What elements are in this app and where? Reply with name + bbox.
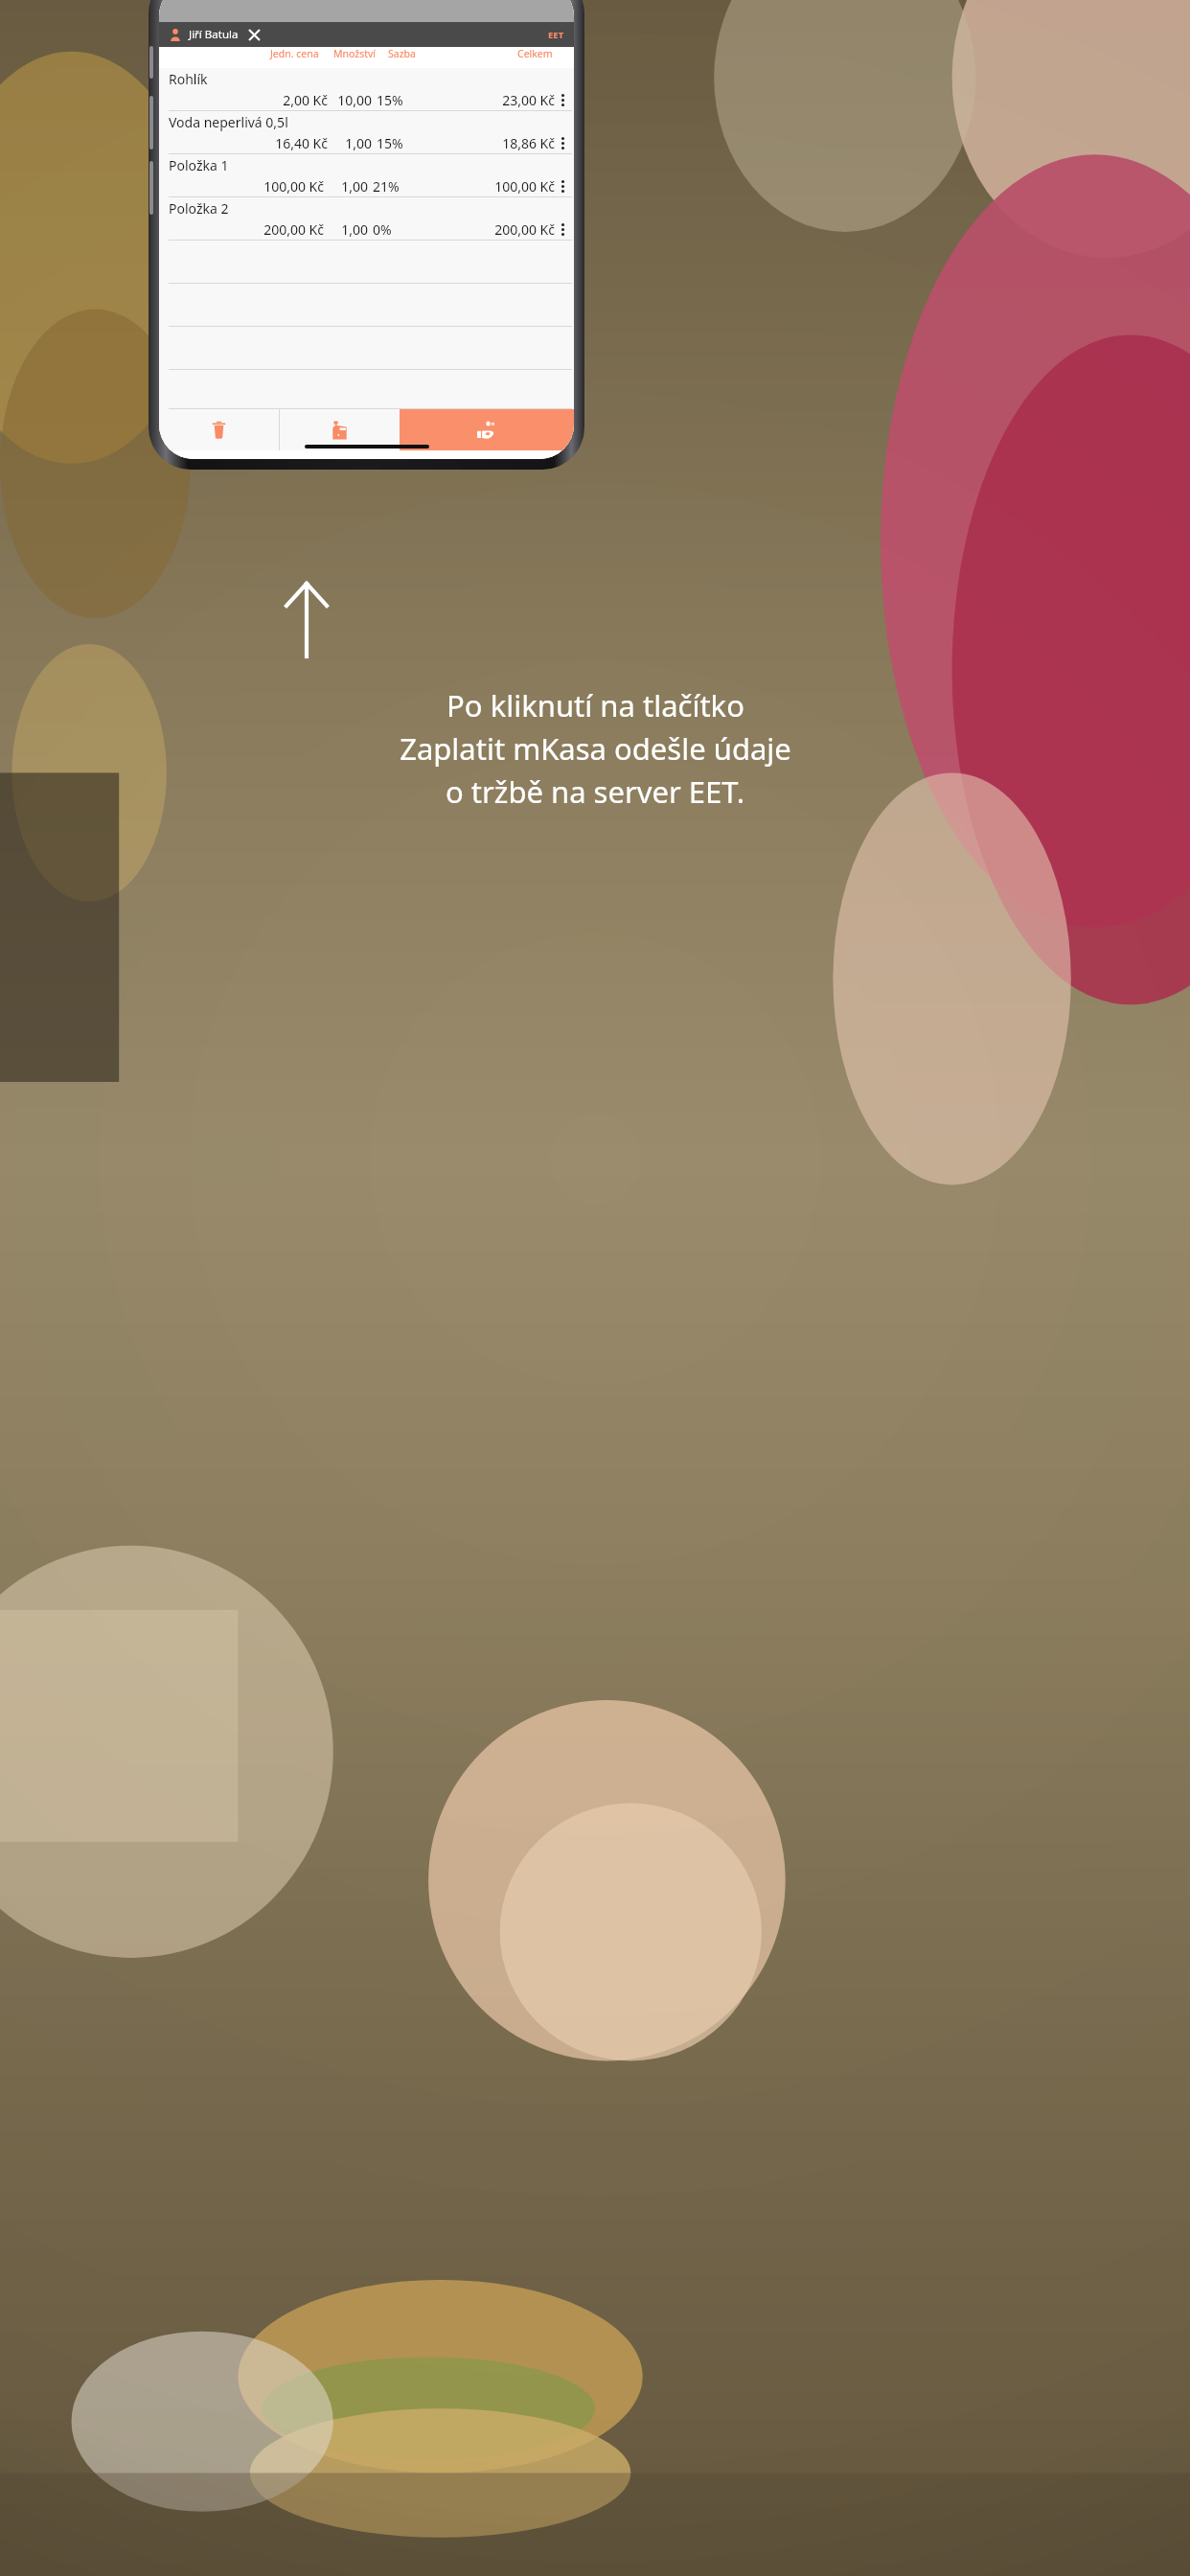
staticText: Položka 2 (169, 199, 229, 218)
staticText: EET (548, 29, 564, 41)
staticText: 100,00 Kč (494, 177, 555, 195)
staticText: 15% (377, 91, 405, 109)
staticText: 0% (373, 220, 401, 239)
staticText: 16,40 Kč (264, 134, 328, 152)
staticText: 15% (377, 134, 405, 152)
staticText: o tržbě na server EET. (446, 771, 744, 812)
staticText: Množství (333, 47, 388, 60)
button[interactable]: More options (555, 89, 570, 110)
staticText: Jiří Batula (189, 27, 239, 42)
staticText: Sazba (388, 47, 416, 60)
button[interactable]: Voda neperlivá 0,5l (159, 111, 574, 154)
staticText: 200,00 Kč (494, 220, 555, 239)
button[interactable]: More options (555, 132, 570, 153)
staticText: 23,00 Kč (502, 91, 555, 109)
staticText: Voda neperlivá 0,5l (169, 113, 288, 131)
button[interactable]: More options (555, 218, 570, 240)
staticText: 100,00 Kč (261, 177, 324, 195)
staticText: Položka 1 (169, 156, 229, 174)
staticText: 18,86 Kč (502, 134, 555, 152)
button[interactable]: Remove customer (246, 27, 262, 42)
staticText: Rohlík (169, 70, 208, 88)
staticText: Zaplatit mKasa odešle údaje (400, 728, 791, 769)
staticText: Po kliknutí na tlačítko (446, 685, 744, 725)
staticText: 21% (373, 177, 401, 195)
button[interactable]: Zaplatit (400, 409, 574, 450)
staticText: 200,00 Kč (261, 220, 324, 239)
staticText: 2,00 Kč (264, 91, 328, 109)
button[interactable]: More options (555, 175, 570, 196)
staticText: 1,00 (328, 177, 368, 195)
button[interactable]: Položka 2 (159, 197, 574, 241)
staticText: 1,00 (332, 134, 372, 152)
staticText: Celkem (517, 47, 553, 60)
button[interactable]: Položka 1 (159, 154, 574, 197)
staticText: 10,00 (332, 91, 372, 109)
button[interactable]: Cash register (280, 409, 400, 450)
button[interactable]: Rohlík (159, 68, 574, 111)
staticText: 1,00 (328, 220, 368, 239)
other: Customer (169, 28, 182, 41)
staticText: Jedn. cena (270, 47, 333, 60)
button[interactable]: Delete (159, 409, 279, 450)
